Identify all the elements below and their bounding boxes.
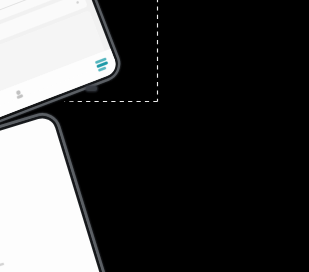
other: Connection guide	[0, 0, 309, 272]
button[interactable]: App preview on phones	[0, 0, 309, 272]
